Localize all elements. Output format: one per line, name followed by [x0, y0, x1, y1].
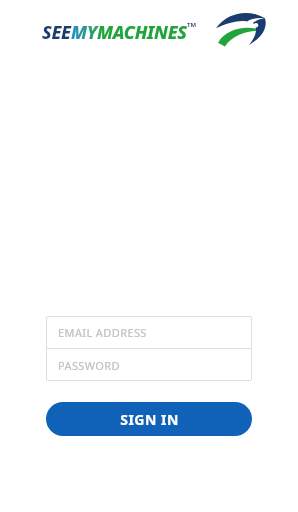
- staticText: MACHINES: [97, 20, 187, 45]
- staticText: SEE: [42, 20, 71, 45]
- staticText: SIGN IN: [120, 410, 179, 429]
- staticText: MY: [71, 20, 97, 45]
- staticText: EMAIL ADDRESS: [58, 325, 147, 340]
- staticText: PASSWORD: [58, 358, 120, 373]
- button[interactable]: PASSWORD: [46, 349, 252, 381]
- staticText: TM: [187, 21, 197, 29]
- button[interactable]: EMAIL ADDRESS: [46, 316, 252, 348]
- button[interactable]: SIGN IN: [46, 402, 252, 436]
